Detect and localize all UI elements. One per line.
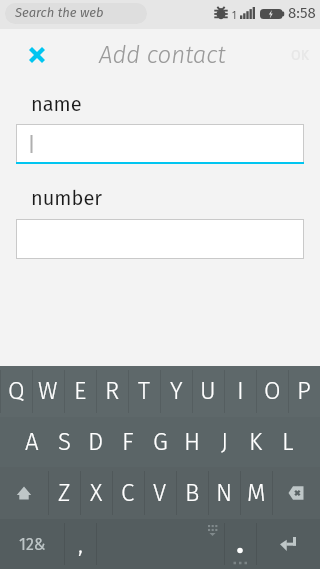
button[interactable]: E xyxy=(64,366,96,417)
button[interactable]: 12& xyxy=(0,519,64,569)
staticText: U xyxy=(200,377,216,406)
button[interactable] xyxy=(224,519,256,569)
staticText: H xyxy=(184,428,201,457)
button[interactable]: O xyxy=(256,366,288,417)
staticText: 1 xyxy=(232,10,237,22)
staticText: 8:58 xyxy=(288,4,316,22)
button[interactable]: I xyxy=(224,366,256,417)
button[interactable]: F xyxy=(112,417,144,467)
button[interactable]: S xyxy=(48,417,80,467)
staticText: M xyxy=(247,479,266,508)
button[interactable]: D xyxy=(80,417,112,467)
button[interactable]: Q xyxy=(0,366,32,417)
staticText: number xyxy=(31,186,102,210)
staticText: G xyxy=(153,428,168,457)
button[interactable] xyxy=(16,124,304,164)
button[interactable]: Y xyxy=(160,366,192,417)
staticText: N xyxy=(216,479,233,508)
button[interactable]: J xyxy=(208,417,240,467)
staticText: J xyxy=(221,428,228,457)
staticText: Z xyxy=(58,479,71,508)
staticText: R xyxy=(105,377,120,406)
staticText: F xyxy=(122,428,134,457)
button[interactable]: A xyxy=(16,417,48,467)
button[interactable]: M xyxy=(240,467,272,519)
button[interactable]: P xyxy=(288,366,320,417)
staticText: OK xyxy=(291,47,309,64)
button[interactable]: N xyxy=(208,467,240,519)
staticText: W xyxy=(38,377,58,406)
button[interactable]: G xyxy=(144,417,176,467)
staticText: A xyxy=(25,428,39,457)
button[interactable]: Search the web xyxy=(5,3,147,24)
staticText: K xyxy=(249,428,263,457)
button[interactable]: T xyxy=(128,366,160,417)
button[interactable]: C xyxy=(112,467,144,519)
staticText: D xyxy=(88,428,104,457)
button[interactable]: Enter xyxy=(256,519,320,569)
staticText: Y xyxy=(170,377,183,406)
staticText: , xyxy=(78,530,83,559)
staticText: V xyxy=(153,479,167,508)
button[interactable]: Space xyxy=(96,519,224,569)
button[interactable]: U xyxy=(192,366,224,417)
staticText: X xyxy=(90,479,103,508)
staticText: Q xyxy=(8,377,25,406)
staticText: S xyxy=(58,428,71,457)
button[interactable]: Close xyxy=(13,29,61,80)
staticText: L xyxy=(282,428,294,457)
staticText: I xyxy=(237,377,244,406)
staticText: C xyxy=(121,479,135,508)
button[interactable]: X xyxy=(80,467,112,519)
button[interactable]: W xyxy=(32,366,64,417)
staticText: P xyxy=(297,377,311,406)
staticText: 12& xyxy=(19,535,46,554)
button[interactable]: B xyxy=(176,467,208,519)
button[interactable]: H xyxy=(176,417,208,467)
button[interactable]: , xyxy=(64,519,96,569)
staticText: E xyxy=(74,377,87,406)
button[interactable]: Backspace xyxy=(272,467,320,519)
button[interactable] xyxy=(16,219,304,259)
staticText: O xyxy=(264,377,281,406)
button[interactable]: Z xyxy=(48,467,80,519)
button[interactable]: R xyxy=(96,366,128,417)
staticText: Search the web xyxy=(15,5,104,21)
staticText: Add contact xyxy=(99,41,226,70)
staticText: name xyxy=(31,92,82,116)
staticText: B xyxy=(185,479,200,508)
button[interactable]: V xyxy=(144,467,176,519)
button[interactable]: K xyxy=(240,417,272,467)
button[interactable]: Shift xyxy=(0,467,48,519)
staticText: T xyxy=(138,377,150,406)
button[interactable]: L xyxy=(272,417,304,467)
